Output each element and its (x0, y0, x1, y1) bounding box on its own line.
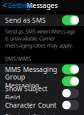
staticText: Blocked Contacts (5, 113, 58, 115)
staticText: Messages (26, 1, 57, 10)
staticText: Character Count (5, 101, 56, 110)
staticText: Send as SMS (5, 16, 46, 25)
staticText: < (2, 0, 7, 11)
staticText: SMS/MMS (5, 55, 31, 62)
button[interactable]: Show Subject Field (0, 87, 84, 99)
button[interactable]: Group Messaging (0, 75, 84, 87)
staticText: Show Subject Field (5, 84, 47, 102)
staticText: Group Messaging (5, 72, 39, 90)
button[interactable]: MMS Messaging (0, 64, 84, 75)
button[interactable]: Send as SMS (0, 14, 84, 26)
button[interactable]: Blocked Contacts (0, 111, 84, 115)
button[interactable]: < (0, 0, 36, 11)
staticText: Send as SMS when iMessage is unavailable… (5, 28, 75, 49)
staticText: Settings (8, 1, 33, 10)
staticText: MMS Messaging (5, 65, 57, 74)
button[interactable]: Character Count (0, 99, 84, 111)
